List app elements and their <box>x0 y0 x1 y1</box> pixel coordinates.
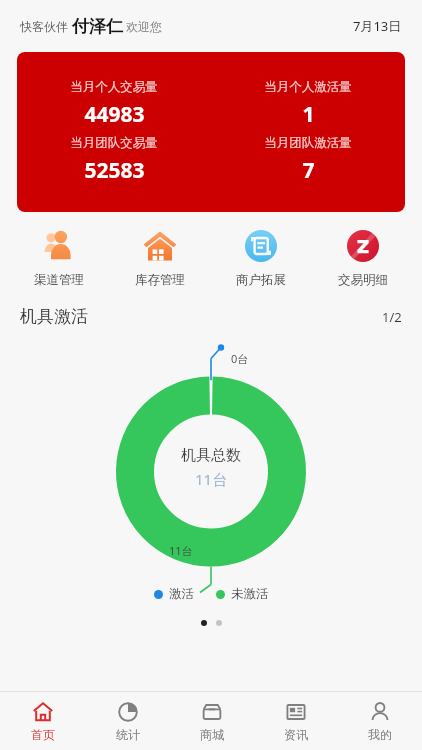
button[interactable]: 当月个人激活量 <box>211 79 405 129</box>
staticText: 渠道管理 <box>34 272 84 288</box>
staticText: 52583 <box>84 156 145 185</box>
staticText: 0台 <box>231 351 249 366</box>
staticText: 资讯 <box>284 727 308 742</box>
staticText: 1 <box>302 100 315 129</box>
staticText: 激活 <box>169 586 194 602</box>
button[interactable]: 当月个人交易量 <box>17 79 211 129</box>
staticText: 商户拓展 <box>236 272 286 288</box>
button[interactable]: 资讯 <box>254 692 338 750</box>
staticText: 当月个人激活量 <box>264 79 352 95</box>
button[interactable]: 首页 <box>0 692 85 750</box>
staticText: 机具激活 <box>20 306 88 327</box>
staticText: 11台 <box>195 469 228 489</box>
staticText: 统计 <box>116 727 140 742</box>
staticText: 当月个人交易量 <box>70 79 158 95</box>
button[interactable]: 库存管理 <box>109 226 210 288</box>
button[interactable]: 商户拓展 <box>210 226 312 288</box>
staticText: 未激活 <box>231 586 269 602</box>
staticText: 付泽仁 <box>72 16 123 37</box>
button[interactable]: 我的 <box>338 692 422 750</box>
staticText: 11台 <box>169 543 193 558</box>
staticText: 7 <box>302 156 315 185</box>
staticText: 快客伙伴 <box>20 18 72 34</box>
staticText: 7月13日 <box>353 17 402 35</box>
staticText: 当月团队激活量 <box>264 135 352 151</box>
staticText: 库存管理 <box>135 272 185 288</box>
button[interactable]: 交易明细 <box>312 226 414 288</box>
button[interactable]: 激活 <box>154 586 194 602</box>
button[interactable]: 统计 <box>85 692 170 750</box>
staticText: 交易明细 <box>338 272 388 288</box>
staticText: 我的 <box>368 727 392 742</box>
button[interactable]: 当月个人交易量 <box>17 52 405 212</box>
staticText: 当月团队交易量 <box>70 135 158 151</box>
button[interactable]: 当月团队交易量 <box>17 135 211 185</box>
staticText: 欢迎您 <box>123 18 163 34</box>
staticText: 机具总数 <box>181 446 241 465</box>
button[interactable]: 未激活 <box>216 586 269 602</box>
staticText: 1/2 <box>382 308 402 326</box>
button[interactable]: 当月团队激活量 <box>211 135 405 185</box>
staticText: 44983 <box>84 100 145 129</box>
staticText: 商城 <box>200 727 224 742</box>
staticText: 首页 <box>31 727 55 742</box>
button[interactable]: 商城 <box>170 692 254 750</box>
button[interactable]: 渠道管理 <box>8 226 109 288</box>
